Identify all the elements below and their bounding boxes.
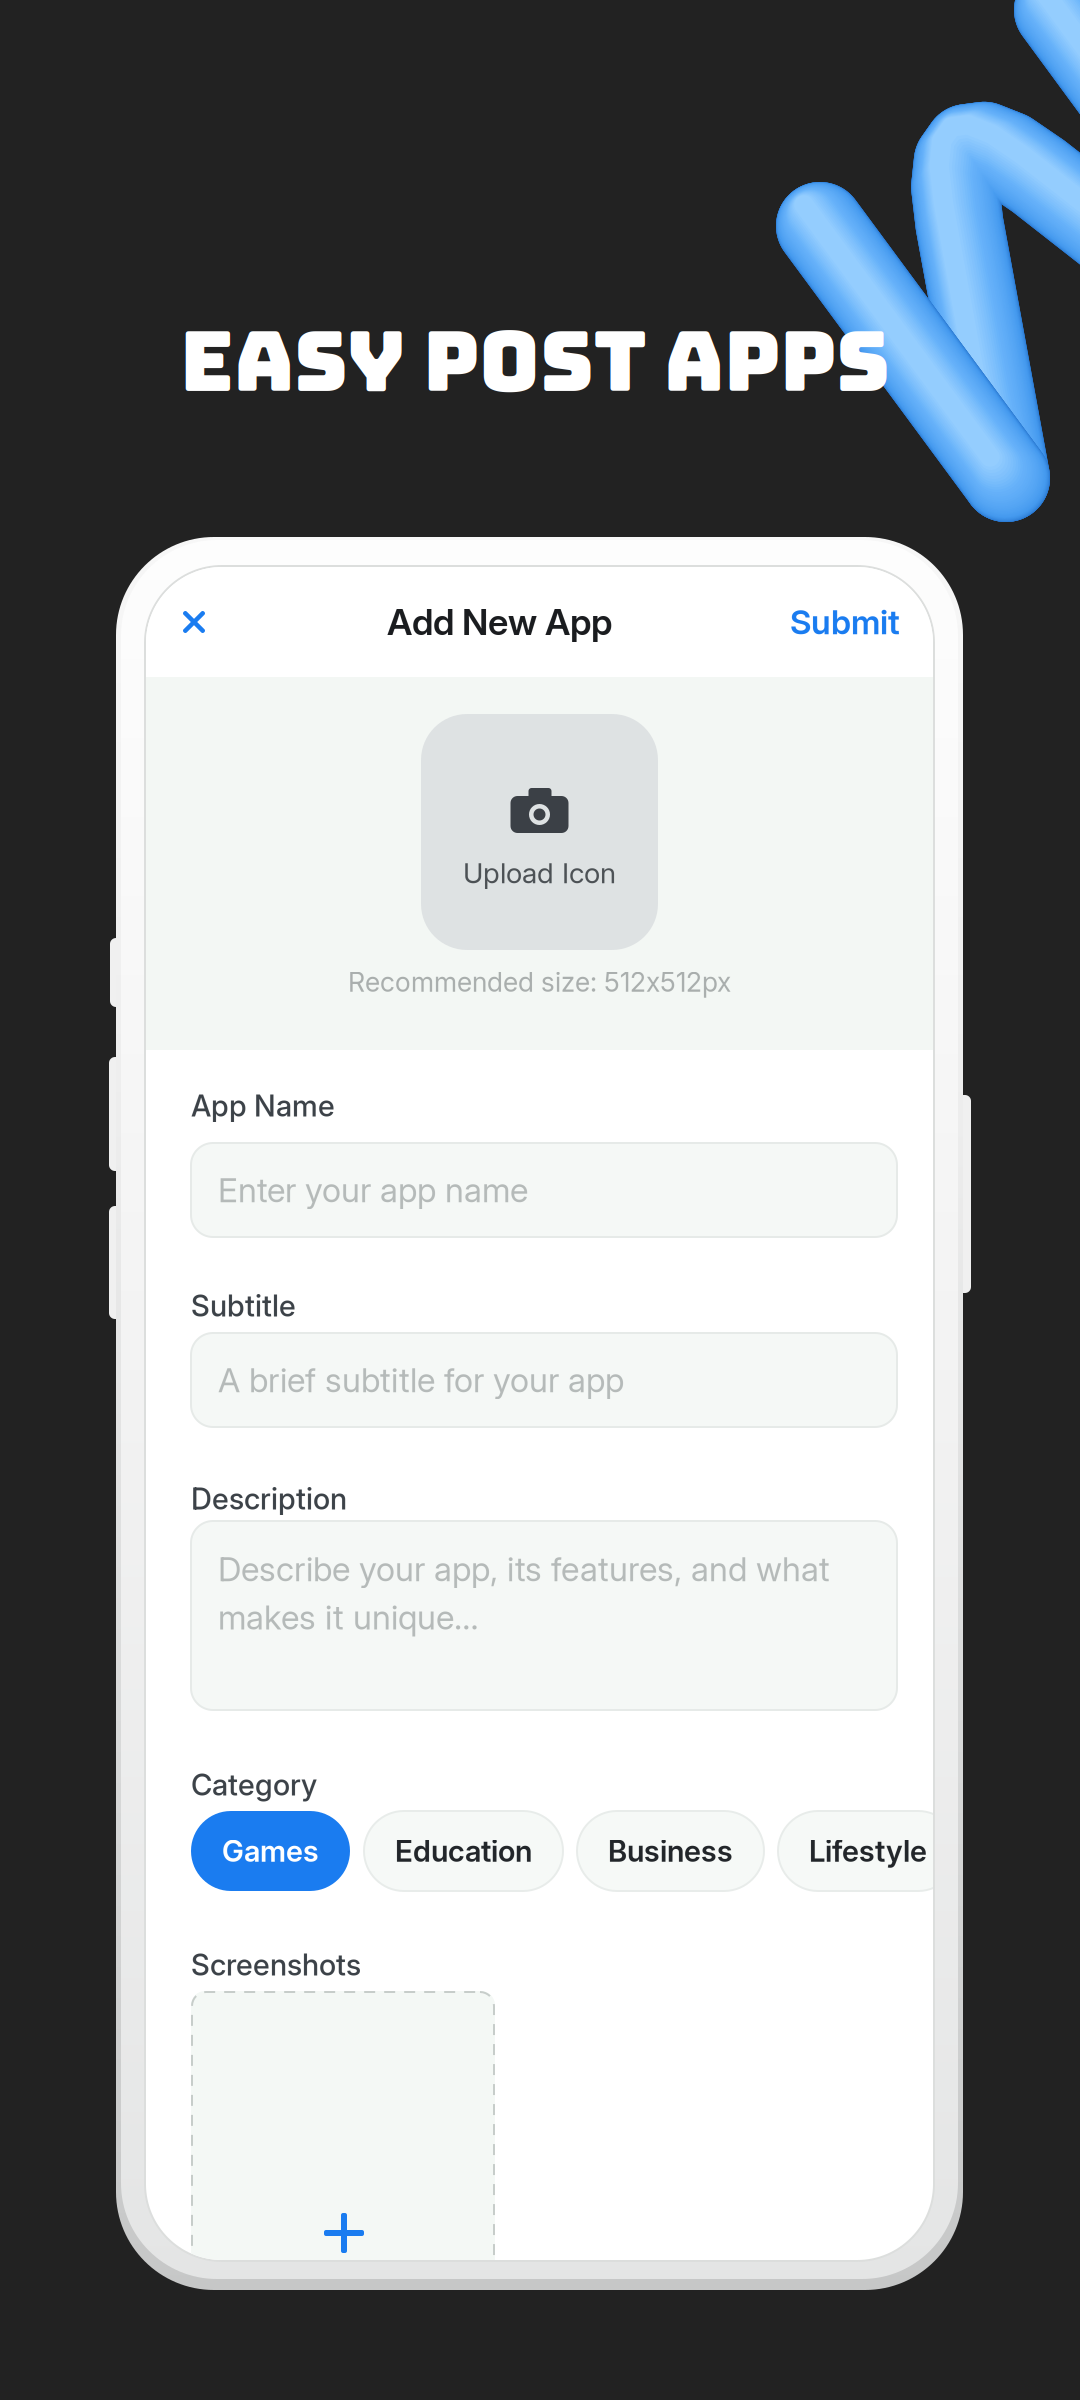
staticText: makes it unique… [218, 1597, 479, 1638]
button[interactable]: Lifestyle [778, 1811, 958, 1891]
staticText: Education [395, 1833, 532, 1869]
staticText: Subtitle [191, 1288, 296, 1323]
staticText: EASY POST APPS [180, 307, 890, 416]
staticText: Games [222, 1833, 319, 1869]
staticText: Category [191, 1767, 317, 1802]
button[interactable]: Games [191, 1811, 350, 1891]
staticText: Screenshots [191, 1947, 361, 1982]
button[interactable]: Add screenshot [191, 1991, 495, 2291]
button[interactable]: Close [179, 600, 209, 644]
staticText: Lifestyle [809, 1833, 927, 1869]
staticText: Description [191, 1481, 347, 1516]
staticText: A brief subtitle for your app [218, 1360, 624, 1400]
staticText: Submit [790, 602, 900, 642]
staticText: Recommended size: 512x512px [348, 966, 731, 998]
button[interactable]: Upload Icon [421, 714, 658, 950]
staticText: App Name [191, 1088, 335, 1123]
button[interactable]: Submit [790, 600, 900, 644]
staticText: Enter your app name [218, 1170, 528, 1210]
staticText: Business [608, 1833, 733, 1869]
button[interactable]: Education [364, 1811, 563, 1891]
staticText: Upload Icon [463, 856, 616, 890]
button[interactable]: Business [577, 1811, 764, 1891]
staticText: Describe your app, its features, and wha… [218, 1549, 830, 1589]
staticText: Add New App [387, 600, 612, 644]
